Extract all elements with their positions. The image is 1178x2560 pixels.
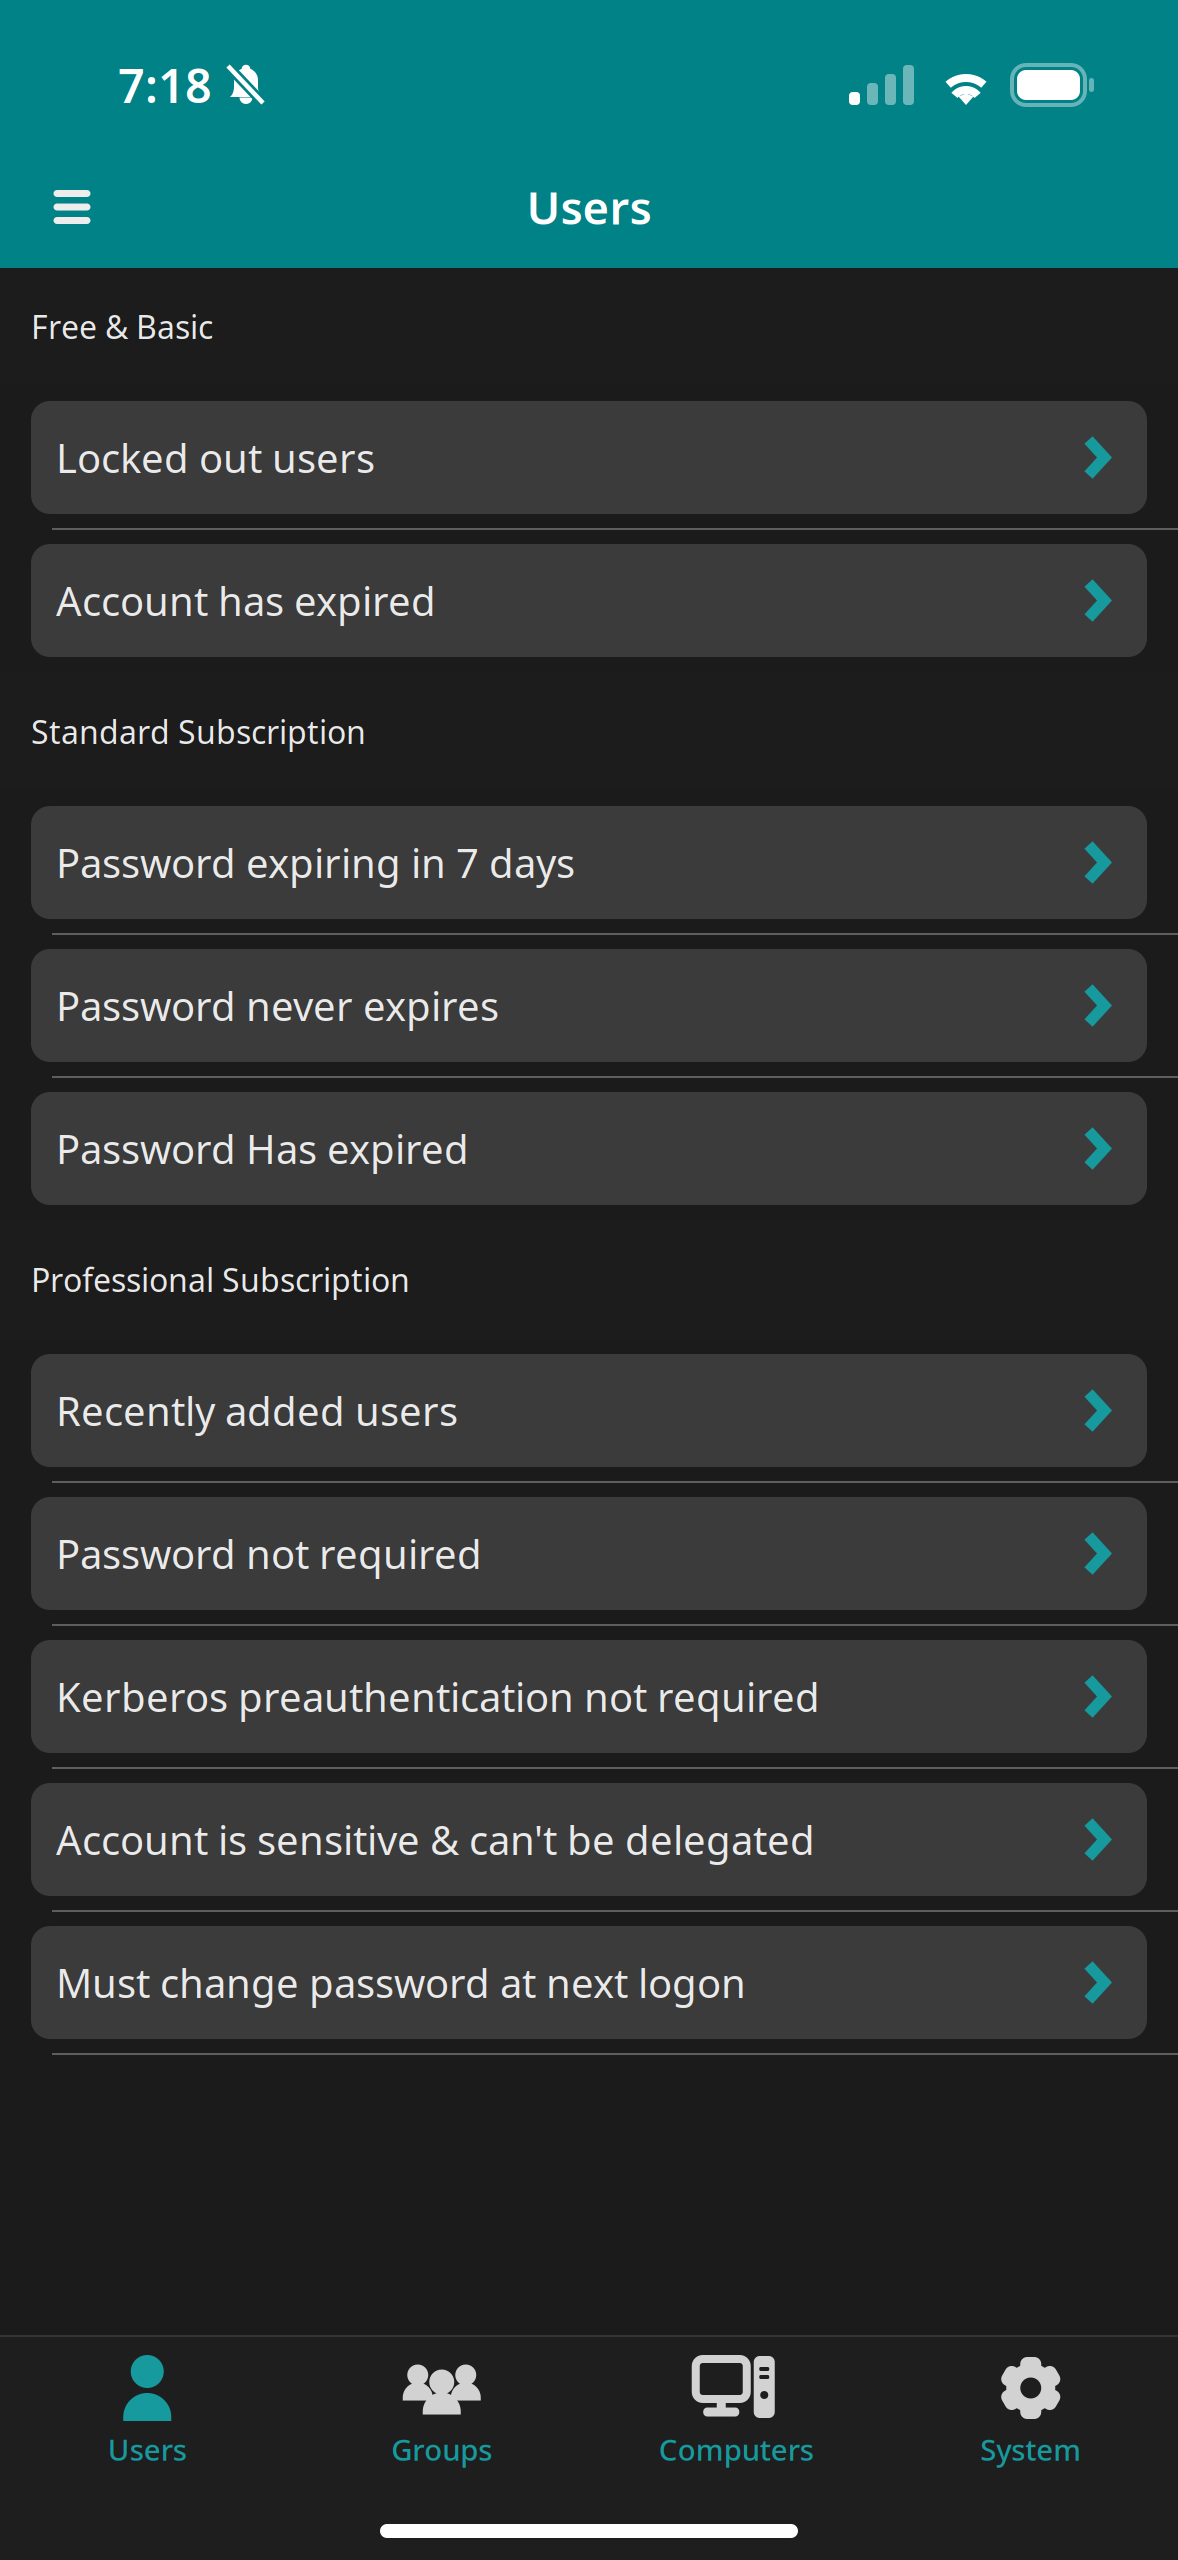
button[interactable]: Kerberos preauthentication not required: [31, 1640, 1147, 1753]
button[interactable]: Must change password at next logon: [31, 1926, 1147, 2039]
staticText: Free & Basic: [31, 305, 213, 348]
staticText: Password never expires: [56, 979, 499, 1032]
staticText: Kerberos preauthentication not required: [56, 1670, 820, 1723]
staticText: Must change password at next logon: [56, 1956, 746, 2009]
staticText: Password expiring in 7 days: [56, 836, 575, 889]
button[interactable]: Groups: [294, 2333, 589, 2481]
staticText: 7:18: [118, 54, 212, 116]
button[interactable]: Recently added users: [31, 1354, 1147, 1467]
staticText: Professional Subscription: [31, 1258, 410, 1301]
button[interactable]: Password not required: [31, 1497, 1147, 1610]
button[interactable]: Menu: [34, 171, 110, 243]
button[interactable]: Account is sensitive & can't be delegate…: [31, 1783, 1147, 1896]
staticText: Standard Subscription: [31, 710, 366, 753]
button[interactable]: Password expiring in 7 days: [31, 806, 1147, 919]
staticText: System: [980, 2430, 1081, 2469]
staticText: Password not required: [56, 1527, 482, 1580]
button[interactable]: Computers: [589, 2333, 883, 2481]
button[interactable]: Account has expired: [31, 544, 1147, 657]
staticText: Locked out users: [56, 431, 375, 484]
button[interactable]: System: [883, 2333, 1178, 2481]
staticText: Users: [526, 177, 651, 237]
button[interactable]: Password never expires: [31, 949, 1147, 1062]
staticText: Computers: [659, 2430, 814, 2469]
staticText: Users: [108, 2430, 187, 2469]
staticText: Account is sensitive & can't be delegate…: [56, 1813, 815, 1866]
staticText: Password Has expired: [56, 1122, 469, 1175]
staticText: Recently added users: [56, 1384, 458, 1437]
button[interactable]: Users: [0, 2333, 294, 2481]
staticText: Groups: [391, 2430, 492, 2469]
staticText: Account has expired: [56, 574, 436, 627]
button[interactable]: Locked out users: [31, 401, 1147, 514]
button[interactable]: Password Has expired: [31, 1092, 1147, 1205]
